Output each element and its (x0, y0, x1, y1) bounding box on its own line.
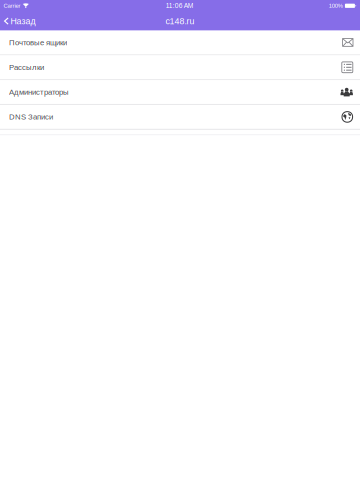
button[interactable]: Администраторы (0, 80, 360, 105)
staticText: Назад (10, 16, 35, 26)
staticText: Рассылки (9, 63, 44, 72)
staticText: 11:06 AM (166, 2, 194, 9)
staticText: 100% (329, 2, 343, 9)
staticText: DNS Записи (9, 113, 53, 121)
button[interactable]: Почтовые ящики (0, 31, 360, 55)
staticText: Carrier (4, 2, 21, 9)
button[interactable]: Назад (0, 12, 40, 31)
staticText: c148.ru (165, 16, 194, 26)
button[interactable]: DNS Записи (0, 105, 360, 130)
staticText: Администраторы (9, 88, 69, 96)
button[interactable]: Рассылки (0, 55, 360, 80)
staticText: Почтовые ящики (9, 38, 67, 47)
